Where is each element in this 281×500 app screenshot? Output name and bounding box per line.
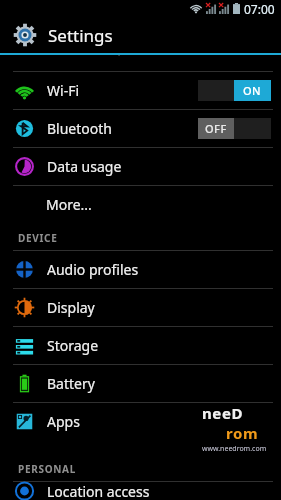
- staticText: neeD: [202, 403, 244, 423]
- staticText: Display: [47, 298, 95, 317]
- button[interactable]: Storage: [0, 327, 281, 364]
- staticText: 07:00: [244, 1, 275, 17]
- button[interactable]: Data usage: [0, 148, 281, 185]
- staticText: SIM management: [46, 55, 164, 56]
- button[interactable]: Audio profiles: [0, 251, 281, 288]
- staticText: rom: [226, 423, 259, 443]
- staticText: More...: [46, 195, 92, 214]
- staticText: Battery: [47, 374, 95, 393]
- button[interactable]: Apps: [0, 403, 281, 440]
- button[interactable]: Display: [0, 289, 281, 326]
- staticText: OFF: [205, 121, 227, 136]
- staticText: Audio profiles: [47, 260, 139, 279]
- staticText: ON: [243, 83, 262, 98]
- button[interactable]: Switch off: [198, 118, 271, 139]
- staticText: Bluetooth: [47, 119, 112, 138]
- button[interactable]: Switch on: [198, 80, 271, 101]
- staticText: PERSONAL: [18, 462, 77, 476]
- button[interactable]: Settings: [0, 17, 281, 53]
- staticText: www.needrom.com: [202, 444, 267, 454]
- staticText: DEVICE: [18, 231, 58, 245]
- staticText: Location access: [47, 482, 150, 500]
- button[interactable]: More...: [0, 186, 281, 223]
- staticText: Wi-Fi: [47, 81, 80, 100]
- staticText: Storage: [47, 336, 99, 355]
- button[interactable]: Wi-Fi: [0, 72, 281, 109]
- staticText: Apps: [47, 412, 80, 431]
- button[interactable]: Bluetooth: [0, 110, 281, 147]
- button[interactable]: Location access: [0, 482, 281, 500]
- button[interactable]: Battery: [0, 365, 281, 402]
- staticText: Data usage: [47, 157, 122, 176]
- staticText: Settings: [48, 24, 113, 47]
